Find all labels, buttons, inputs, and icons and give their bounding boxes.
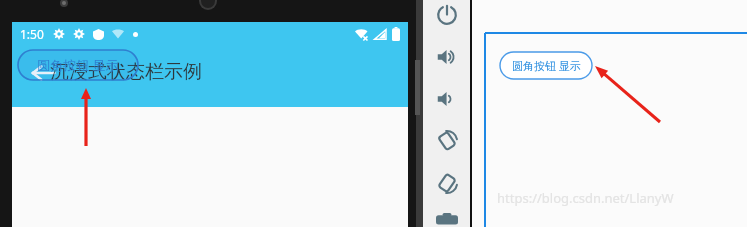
staticText: https://blog.csdn.net/LlanyW <box>497 189 674 207</box>
button[interactable]: Volume up <box>433 43 461 71</box>
staticText: 圆角按钮 显示 <box>512 58 581 73</box>
button[interactable]: Back <box>28 58 58 88</box>
staticText: 1:50 <box>20 26 44 42</box>
button[interactable]: 圆角按钮 显示 <box>18 50 138 80</box>
button[interactable]: Volume down <box>433 85 461 113</box>
button[interactable]: Screenshot <box>433 211 461 227</box>
button[interactable]: Power <box>433 1 461 29</box>
button[interactable]: 圆角按钮 显示 <box>500 52 592 79</box>
button[interactable]: Rotate left <box>433 127 461 155</box>
button[interactable]: Rotate right <box>433 169 461 197</box>
staticText: 沉浸式状态栏示例 <box>50 60 202 84</box>
staticText: 圆角按钮 显示 <box>37 56 119 74</box>
